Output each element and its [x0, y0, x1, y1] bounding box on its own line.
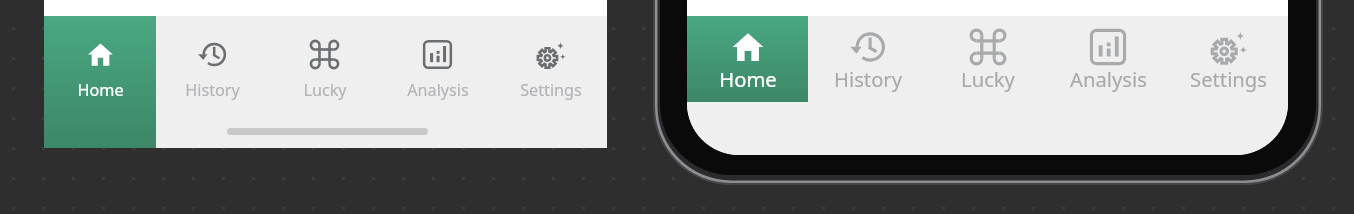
staticText: Home [77, 79, 124, 101]
staticText: History [185, 79, 240, 101]
button[interactable]: Home [44, 16, 156, 148]
staticText: Lucky [961, 65, 1015, 93]
button[interactable]: History [156, 16, 268, 148]
staticText: Analysis [1070, 65, 1147, 93]
staticText: Lucky [303, 79, 347, 101]
button[interactable]: Settings [494, 16, 607, 148]
staticText: Analysis [407, 79, 469, 101]
button[interactable]: Lucky [268, 16, 381, 148]
staticText: Settings [520, 79, 582, 101]
button[interactable]: Settings [1168, 16, 1288, 102]
staticText: Settings [1190, 65, 1267, 93]
button[interactable]: Analysis [1048, 16, 1168, 102]
staticText: History [834, 65, 902, 93]
button[interactable]: Lucky [928, 16, 1048, 102]
button[interactable]: History [808, 16, 928, 102]
button[interactable]: Analysis [381, 16, 494, 148]
staticText: Home [719, 65, 777, 93]
button[interactable]: Home [687, 16, 808, 102]
